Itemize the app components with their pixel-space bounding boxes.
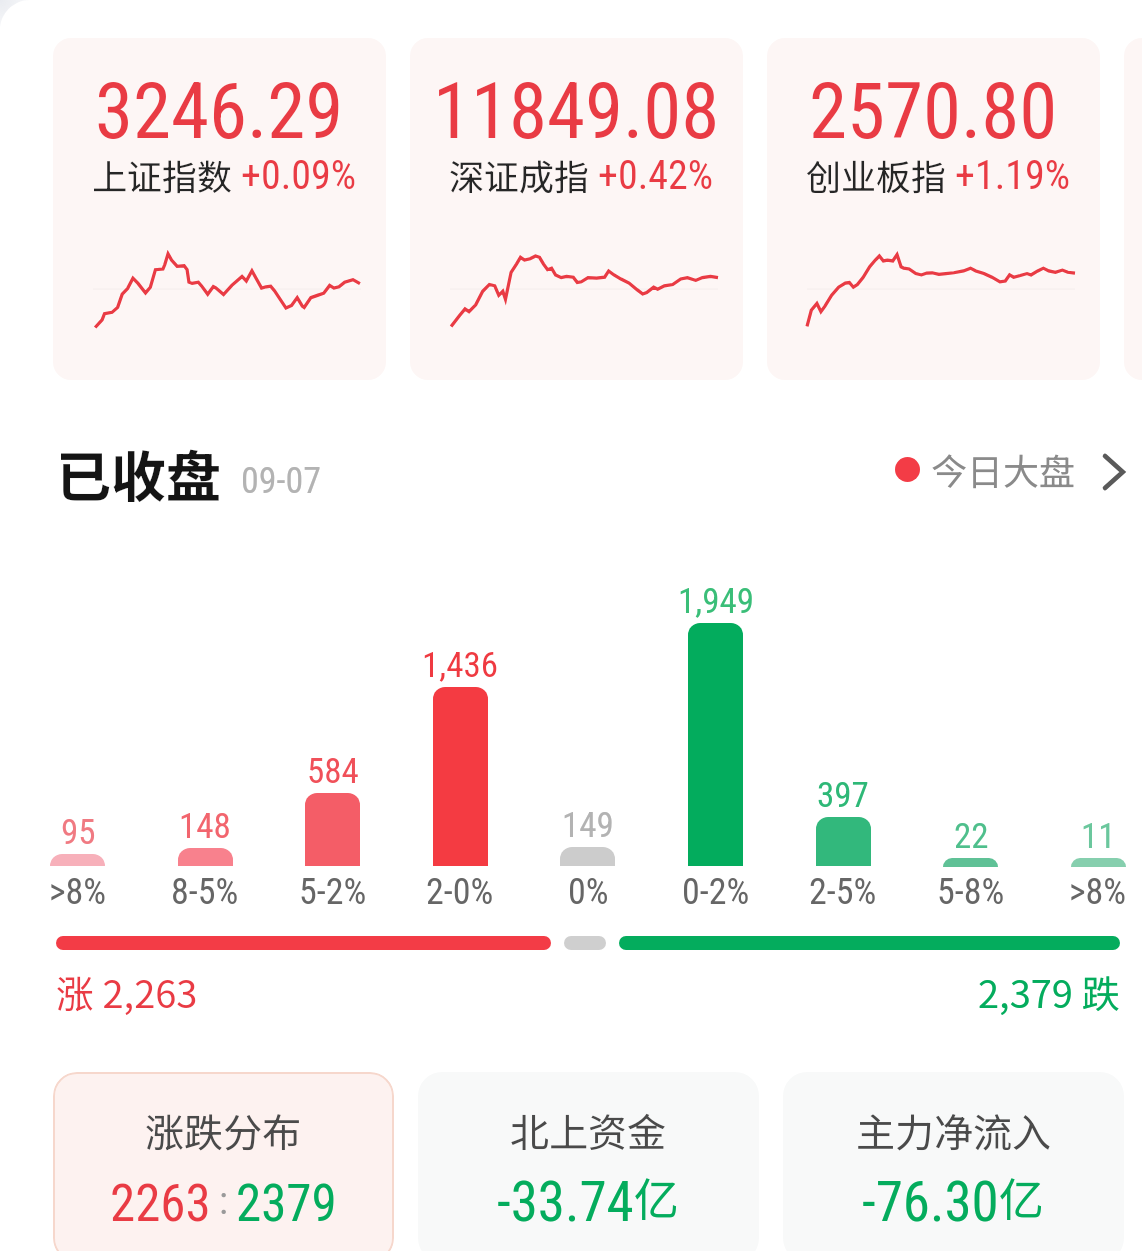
staticText: 涨 2,263 xyxy=(56,964,198,1019)
staticText: 2263 xyxy=(110,1174,211,1234)
staticText: -33.74 xyxy=(497,1170,634,1234)
staticText: +0.42% xyxy=(598,152,713,199)
staticText: 5-8% xyxy=(937,871,1005,913)
button[interactable]: 涨跌分布 xyxy=(53,1072,394,1251)
staticText: +1.19% xyxy=(955,152,1070,199)
staticText: +0.09% xyxy=(241,152,356,199)
button[interactable]: 11849.08 xyxy=(410,38,743,380)
staticText: 已收盘 xyxy=(56,433,222,513)
staticText: 397 xyxy=(817,775,869,816)
staticText: 0% xyxy=(568,871,609,913)
staticText: 亿 xyxy=(999,1164,1045,1229)
staticText: : xyxy=(219,1179,228,1224)
staticText: 11849.08 xyxy=(433,67,720,157)
staticText: 5-2% xyxy=(299,871,367,913)
staticText: 上证指数 xyxy=(92,149,233,200)
staticText: 2,379 跌 xyxy=(978,964,1120,1019)
staticText: 主力净流入 xyxy=(856,1102,1052,1158)
staticText: 22 xyxy=(954,816,989,857)
staticText: 2-0% xyxy=(426,871,494,913)
staticText: 亿 xyxy=(634,1164,680,1229)
other: 查看今日大盘 xyxy=(1093,452,1133,492)
button[interactable]: 已收盘 xyxy=(56,433,322,513)
staticText: 584 xyxy=(307,751,359,792)
staticText: 北上资金 xyxy=(510,1102,667,1158)
staticText: -76.30 xyxy=(862,1170,999,1234)
staticText: 148 xyxy=(179,806,231,847)
staticText: >8% xyxy=(49,871,107,913)
button[interactable]: 2570.80 xyxy=(767,38,1100,380)
staticText: 2379 xyxy=(236,1174,337,1234)
button[interactable]: 3246.29 xyxy=(53,38,386,380)
button[interactable]: 今日大盘 xyxy=(895,437,1127,501)
staticText: 8-5% xyxy=(171,871,239,913)
staticText: 今日大盘 xyxy=(931,443,1076,495)
staticText: 2-5% xyxy=(809,871,877,913)
staticText: 深证成指 xyxy=(449,149,590,200)
staticText: 09-07 xyxy=(241,460,322,502)
staticText: 0-2% xyxy=(682,871,750,913)
button[interactable]: 北上资金 xyxy=(418,1072,759,1251)
staticText: >8% xyxy=(1069,871,1127,913)
staticText: 11 xyxy=(1081,816,1116,857)
staticText: 2570.80 xyxy=(809,67,1058,157)
staticText: 95 xyxy=(61,812,96,853)
staticText: 149 xyxy=(562,805,614,846)
staticText: 1,436 xyxy=(422,645,498,686)
staticText: 3246.29 xyxy=(95,67,344,157)
staticText: 1,949 xyxy=(678,581,754,622)
staticText: 创业板指 xyxy=(806,149,947,200)
button[interactable]: 主力净流入 xyxy=(783,1072,1124,1251)
staticText: 涨跌分布 xyxy=(145,1102,302,1158)
